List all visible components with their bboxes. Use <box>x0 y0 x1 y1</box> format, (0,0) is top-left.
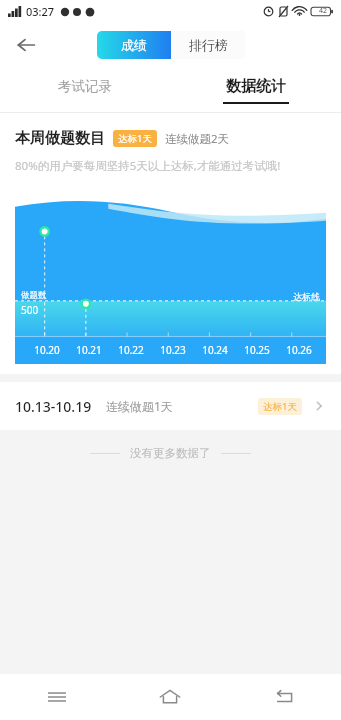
staticText: 10.22 <box>118 343 144 357</box>
staticText: 连续做题1天 <box>106 398 173 414</box>
staticText: 排行榜 <box>189 37 228 53</box>
staticText: 做题数 <box>21 290 47 301</box>
staticText: 10.24 <box>202 343 228 357</box>
staticText: 10.21 <box>76 343 102 357</box>
staticText: 10.25 <box>244 343 270 357</box>
button[interactable]: Recents <box>0 674 113 720</box>
button[interactable]: 成绩 <box>97 31 171 59</box>
button[interactable]: 数据统计 <box>170 68 341 112</box>
staticText: 10.13-10.19 <box>15 397 92 416</box>
staticText: 80%的用户要每周坚持5天以上达标,才能通过考试哦! <box>15 158 281 174</box>
button[interactable]: 排行榜 <box>171 31 245 59</box>
staticText: 500 <box>21 303 39 317</box>
staticText: 03:27 <box>26 4 55 19</box>
staticText: 考试记录 <box>58 78 112 95</box>
staticText: 达标1天 <box>118 132 152 145</box>
staticText: 成绩 <box>121 37 147 53</box>
staticText: 10.26 <box>286 343 312 357</box>
button[interactable]: Back <box>6 25 46 65</box>
staticText: 达标线 <box>293 291 320 302</box>
button[interactable]: Home <box>113 674 227 720</box>
staticText: 数据统计 <box>226 77 286 96</box>
staticText: 达标1天 <box>263 400 297 413</box>
staticText: 10.20 <box>34 343 60 357</box>
button[interactable]: Back <box>227 674 341 720</box>
staticText: 本周做题数目 <box>15 129 105 148</box>
button[interactable]: 10.13-10.19 <box>0 382 341 430</box>
staticText: 42 <box>319 6 328 16</box>
button[interactable]: 考试记录 <box>0 68 170 112</box>
staticText: 连续做题2天 <box>165 131 230 147</box>
staticText: 没有更多数据了 <box>130 446 211 460</box>
staticText: 10.23 <box>160 343 186 357</box>
